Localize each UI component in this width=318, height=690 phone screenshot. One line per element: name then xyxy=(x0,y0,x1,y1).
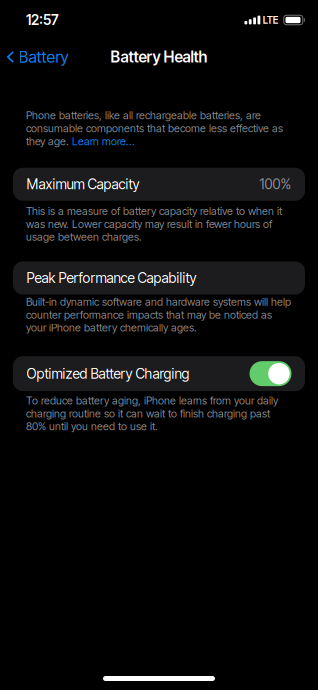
staticText: Peak Performance Capability xyxy=(26,270,196,286)
staticText: 100% xyxy=(259,176,291,193)
button[interactable]: Maximum Capacity xyxy=(0,168,318,201)
staticText: Optimized Battery Charging xyxy=(26,365,189,382)
staticText: Phone batteries, like all rechargeable b… xyxy=(26,109,261,122)
staticText: To reduce battery aging, iPhone learns f… xyxy=(26,394,278,433)
staticText: This is a measure of battery capacity re… xyxy=(26,205,282,243)
staticText: Learn more... xyxy=(72,135,135,148)
staticText: they age. xyxy=(26,135,72,148)
button[interactable]: Peak Performance Capability xyxy=(0,261,318,294)
button[interactable]: Optimized Battery Charging, on xyxy=(249,361,291,386)
button[interactable]: Optimized Battery Charging xyxy=(0,356,318,391)
button[interactable]: Learn more... xyxy=(72,135,135,148)
staticText: Battery Health xyxy=(110,48,207,66)
staticText: Built-in dynamic software and hardware s… xyxy=(26,295,291,334)
button[interactable]: Battery xyxy=(0,42,77,72)
staticText: LTE xyxy=(263,14,279,26)
staticText: consumable components that become less e… xyxy=(26,122,283,135)
staticText: Maximum Capacity xyxy=(26,176,139,193)
staticText: Battery xyxy=(18,47,68,67)
staticText: 12:57 xyxy=(26,11,59,28)
